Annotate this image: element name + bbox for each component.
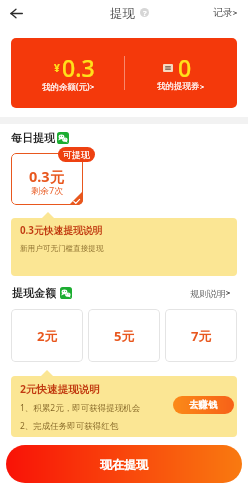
button[interactable]: 0 xyxy=(124,38,237,108)
staticText: 0.3元 xyxy=(29,166,65,186)
staticText: 剩余7次 xyxy=(31,184,64,196)
button[interactable]: 规则说明 xyxy=(190,287,230,299)
staticText: 2元 xyxy=(37,327,58,345)
staticText: 2元快速提现说明 xyxy=(20,382,100,396)
staticText: 2、完成任务即可获得红包 xyxy=(20,420,119,432)
button[interactable]: 7元 xyxy=(165,309,237,362)
staticText: 0.3元快速提现说明 xyxy=(20,224,103,237)
staticText: 每日提现 xyxy=(11,131,55,144)
staticText: 提现金额 xyxy=(12,286,56,299)
staticText: 去赚钱 xyxy=(189,399,218,411)
button[interactable]: ¥ xyxy=(11,38,124,108)
staticText: ? xyxy=(143,8,147,17)
button[interactable]: 去赚钱 xyxy=(173,396,234,414)
staticText: 提现 xyxy=(110,6,135,19)
staticText: 7元 xyxy=(191,327,212,345)
button[interactable]: Back xyxy=(4,1,28,25)
staticText: 1、积累2元，即可获得提现机会 xyxy=(20,402,141,414)
staticText: ¥ xyxy=(54,61,60,75)
staticText: 5元 xyxy=(114,327,135,345)
staticText: 0 xyxy=(178,52,192,83)
staticText: 新用户可无门槛直接提现 xyxy=(20,244,104,254)
staticText: 我的提现券 xyxy=(157,81,200,92)
button[interactable]: 2元 xyxy=(11,309,83,362)
staticText: 0.3 xyxy=(62,52,95,83)
button[interactable]: 5元 xyxy=(88,309,160,362)
button[interactable]: 记录 xyxy=(213,6,237,19)
button[interactable]: 现在提现 xyxy=(6,445,242,483)
button[interactable]: Help xyxy=(140,8,149,17)
staticText: 记录 xyxy=(213,6,233,19)
staticText: 现在提现 xyxy=(100,457,148,472)
staticText: 规则说明 xyxy=(190,288,226,299)
staticText: 可提现 xyxy=(63,149,90,160)
button[interactable]: 0.3元 xyxy=(11,153,83,205)
staticText: 我的余额(元) xyxy=(42,81,90,93)
